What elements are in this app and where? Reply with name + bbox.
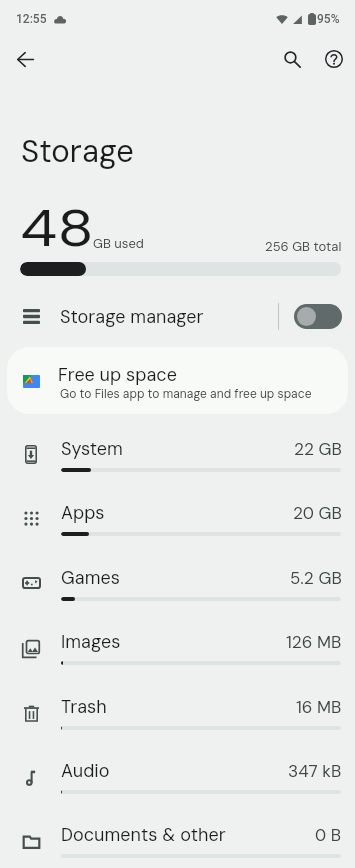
staticText: 16 MB (296, 696, 342, 718)
staticText: 347 kB (288, 760, 342, 782)
button[interactable]: Storage manager toggle (294, 304, 342, 329)
button[interactable]: Trash (0, 680, 355, 744)
staticText: 0 B (315, 824, 342, 846)
staticText: System (61, 437, 123, 460)
staticText: GB used (93, 235, 144, 252)
staticText: Go to Files app to manage and free up sp… (60, 386, 312, 402)
staticText: Apps (61, 501, 105, 524)
staticText: Free up space (58, 363, 177, 386)
staticText: Storage manager (60, 305, 204, 328)
button[interactable]: Free up space (7, 347, 348, 414)
button[interactable]: Audio (0, 744, 355, 808)
staticText: Games (61, 566, 120, 589)
staticText: Audio (61, 759, 110, 782)
button[interactable]: Help (313, 38, 355, 80)
button[interactable]: System (0, 422, 355, 486)
staticText: Trash (61, 695, 107, 718)
button[interactable]: Search (271, 38, 313, 80)
staticText: Documents & other (61, 823, 226, 846)
staticText: 22 GB (294, 438, 342, 460)
button[interactable]: Storage manager (0, 292, 355, 340)
staticText: 5.2 GB (290, 567, 342, 589)
staticText: Storage (21, 131, 134, 171)
staticText: Images (61, 630, 121, 653)
staticText: 126 MB (286, 631, 342, 653)
button[interactable]: Apps (0, 486, 355, 550)
staticText: 12:55 (16, 12, 47, 26)
button[interactable]: Documents & other (0, 808, 355, 868)
staticText: 95% (317, 12, 340, 26)
staticText: 20 GB (293, 502, 342, 524)
button[interactable]: Back (4, 38, 46, 80)
button[interactable]: Games (0, 551, 355, 615)
staticText: 256 GB total (265, 238, 342, 255)
button[interactable]: Images (0, 615, 355, 679)
staticText: 48 (20, 195, 95, 261)
